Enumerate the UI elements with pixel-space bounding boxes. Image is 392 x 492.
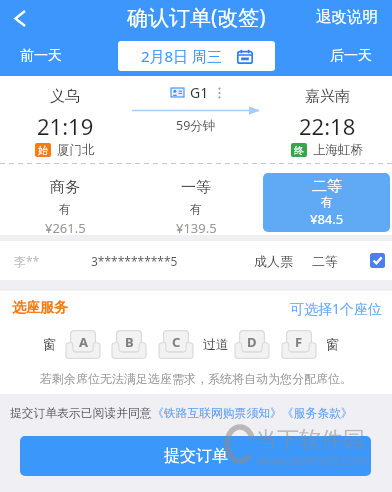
staticText: 李** bbox=[14, 253, 40, 269]
button[interactable]: Back bbox=[0, 0, 40, 36]
button[interactable]: 提交订单 bbox=[20, 436, 371, 476]
staticText: ¥84.5 bbox=[310, 210, 344, 228]
button[interactable]: 李** bbox=[14, 241, 386, 280]
staticText: 成人票 bbox=[254, 253, 293, 269]
staticText: 前一天 bbox=[20, 47, 62, 65]
staticText: 当下软件园 bbox=[255, 426, 365, 454]
staticText: 提交订单 bbox=[164, 446, 228, 466]
staticText: 有 bbox=[190, 201, 202, 216]
staticText: 后一天 bbox=[330, 47, 372, 65]
staticText: F bbox=[295, 333, 303, 351]
staticText: A bbox=[79, 333, 88, 351]
staticText: 有 bbox=[321, 194, 333, 209]
button[interactable]: 退改说明 bbox=[316, 0, 378, 36]
staticText: 上海虹桥 bbox=[313, 142, 363, 158]
button[interactable]: 一等 bbox=[130, 164, 262, 235]
staticText: 若剩余席位无法满足选座需求，系统将自动为您分配席位。 bbox=[40, 371, 352, 386]
staticText: 22:18 bbox=[299, 111, 356, 141]
button[interactable]: Seat F bbox=[282, 330, 316, 359]
button[interactable]: 商务 bbox=[0, 164, 130, 235]
staticText: 二等 bbox=[312, 253, 338, 269]
button[interactable]: Seat D bbox=[235, 330, 269, 359]
button[interactable]: Seat B bbox=[112, 330, 146, 359]
staticText: 提交订单表示已阅读并同意 bbox=[10, 406, 152, 421]
staticText: D bbox=[247, 333, 257, 351]
staticText: 59分钟 bbox=[176, 117, 216, 134]
button[interactable]: 选座服务 bbox=[12, 299, 68, 317]
button[interactable]: 《铁路互联网购票须知》《服务条款》 bbox=[152, 406, 353, 421]
button[interactable]: 后一天 bbox=[330, 36, 372, 76]
staticText: B bbox=[125, 333, 134, 351]
staticText: 过道 bbox=[203, 336, 229, 352]
staticText: 商务 bbox=[50, 178, 80, 197]
staticText: 确认订单(改签) bbox=[127, 3, 266, 32]
button[interactable]: Seat A bbox=[66, 330, 100, 359]
staticText: 终 bbox=[294, 144, 304, 157]
staticText: ¥139.5 bbox=[176, 219, 217, 235]
staticText: G1 bbox=[190, 83, 209, 102]
staticText: 21:19 bbox=[37, 111, 94, 141]
button[interactable]: Seat C bbox=[159, 330, 193, 359]
staticText: 一等 bbox=[181, 178, 211, 197]
staticText: 嘉兴南 bbox=[305, 87, 350, 106]
staticText: ¥261.5 bbox=[45, 219, 86, 235]
button[interactable]: 二等 bbox=[263, 173, 390, 232]
staticText: 有 bbox=[59, 201, 71, 216]
staticText: 窗 bbox=[326, 336, 339, 352]
staticText: 退改说明 bbox=[316, 7, 378, 27]
staticText: 二等 bbox=[312, 177, 342, 196]
staticText: www.downxia.com bbox=[257, 452, 368, 469]
button[interactable]: 2月8日 周三 bbox=[118, 41, 275, 71]
staticText: 厦门北 bbox=[57, 142, 95, 158]
staticText: 2月8日 周三 bbox=[141, 46, 223, 66]
staticText: 3***********5 bbox=[91, 253, 178, 269]
staticText: C bbox=[172, 333, 181, 351]
staticText: 窗 bbox=[43, 336, 56, 352]
button[interactable]: 可选择1个座位 bbox=[290, 299, 383, 318]
staticText: 始 bbox=[38, 144, 48, 157]
staticText: 义乌 bbox=[50, 87, 80, 106]
button[interactable]: 前一天 bbox=[20, 36, 62, 76]
